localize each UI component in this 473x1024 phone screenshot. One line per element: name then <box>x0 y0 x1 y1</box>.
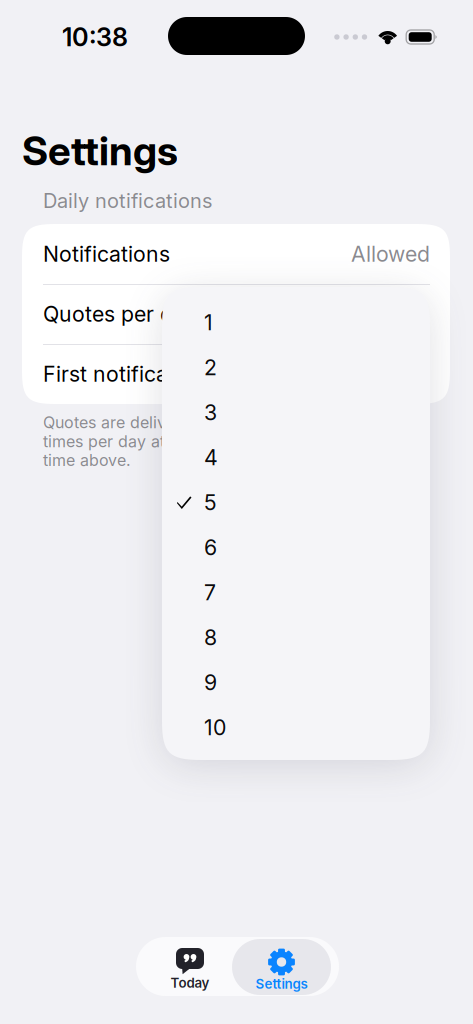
button[interactable]: Today <box>136 937 232 996</box>
button[interactable]: 5 <box>162 480 430 525</box>
staticText: 2 <box>204 355 217 380</box>
staticText: 10 <box>204 715 226 740</box>
staticText: 10:38 <box>62 22 128 52</box>
staticText: Quotes per day <box>43 301 197 327</box>
staticText: 8 <box>204 625 217 650</box>
staticText: Settings <box>255 976 307 992</box>
button[interactable]: 10 <box>162 705 430 750</box>
staticText: Notifications <box>43 241 170 267</box>
staticText: 9 <box>204 670 217 695</box>
button[interactable]: Notifications <box>22 224 450 284</box>
button[interactable]: 8 <box>162 615 430 660</box>
button[interactable]: 2 <box>162 345 430 390</box>
staticText: 3 <box>204 400 217 425</box>
button[interactable]: 9 <box>162 660 430 705</box>
button[interactable]: 6 <box>162 525 430 570</box>
staticText: 5 <box>204 490 217 515</box>
staticText: Daily notifications <box>43 189 212 213</box>
staticText: 6 <box>204 535 217 560</box>
staticText: 4 <box>204 445 218 470</box>
button[interactable]: Quotes per day <box>22 284 450 344</box>
staticText: Settings <box>22 127 178 174</box>
button[interactable]: 7 <box>162 570 430 615</box>
staticText: Allowed <box>351 241 430 267</box>
staticText: First notification <box>43 361 206 387</box>
staticText: Quotes are delivered at random. You get … <box>43 413 377 470</box>
staticText: 1 <box>204 310 213 335</box>
staticText: 7 <box>204 580 216 605</box>
staticText: Today <box>170 975 209 991</box>
button[interactable]: 1 <box>162 300 430 345</box>
button[interactable]: First notification <box>22 344 450 404</box>
button[interactable]: Settings <box>232 939 331 995</box>
button[interactable]: 3 <box>162 390 430 435</box>
button[interactable]: 4 <box>162 435 430 480</box>
